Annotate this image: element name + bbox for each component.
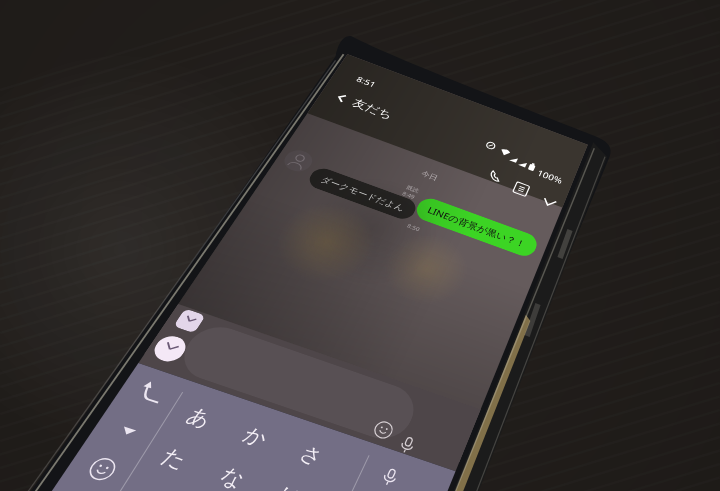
button[interactable]: LINEの背景が黒い？！ (200, 185, 334, 203)
staticText: 100% (310, 67, 346, 86)
button[interactable]: Menu (290, 104, 308, 122)
button[interactable]: Recent (5, 461, 35, 491)
staticText: LINEの背景が黒い？！ (200, 185, 334, 203)
button[interactable]: 8:51 (0, 0, 720, 491)
button[interactable]: Collapse (331, 108, 351, 128)
button[interactable] (34, 432, 292, 491)
